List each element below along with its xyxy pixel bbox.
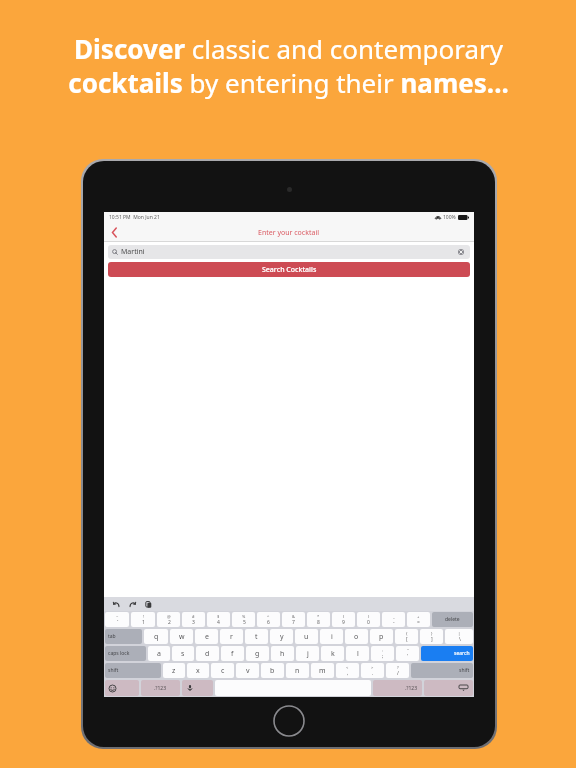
button[interactable]: o xyxy=(345,629,368,644)
button[interactable]: shift xyxy=(105,663,161,678)
staticText: { xyxy=(406,631,408,636)
button[interactable]: ( xyxy=(332,612,355,627)
button[interactable]: k xyxy=(321,646,344,661)
button[interactable]: q xyxy=(144,629,168,644)
button[interactable]: f xyxy=(221,646,244,661)
button[interactable]: Search Cocktails xyxy=(108,262,470,277)
staticText: m xyxy=(319,666,326,676)
staticText: ! xyxy=(143,614,145,619)
staticText: 6 xyxy=(267,619,270,626)
button[interactable]: % xyxy=(232,612,255,627)
staticText: / xyxy=(397,670,399,677)
button[interactable]: Redo xyxy=(127,599,137,609)
button[interactable]: } xyxy=(420,629,443,644)
staticText: @ xyxy=(167,614,171,619)
button[interactable]: x xyxy=(187,663,209,678)
button[interactable]: caps lock xyxy=(105,646,146,661)
button[interactable]: ! xyxy=(131,612,155,627)
button[interactable]: delete xyxy=(432,612,473,627)
staticText: ~ xyxy=(116,614,119,619)
button[interactable]: ~ xyxy=(105,612,129,627)
staticText: 9 xyxy=(342,619,345,626)
button[interactable]: # xyxy=(182,612,205,627)
button[interactable]: > xyxy=(361,663,384,678)
button[interactable]: Dictation xyxy=(182,680,213,696)
button[interactable]: Martini xyxy=(108,245,470,259)
button[interactable]: Undo xyxy=(111,599,121,609)
staticText: = xyxy=(417,619,420,626)
button[interactable]: Paste xyxy=(143,599,153,609)
button[interactable]: shift xyxy=(411,663,473,678)
staticText: e xyxy=(205,632,209,642)
button[interactable]: : xyxy=(371,646,394,661)
button[interactable]: h xyxy=(271,646,294,661)
button[interactable]: Back xyxy=(104,223,124,242)
button[interactable]: + xyxy=(407,612,430,627)
button[interactable]: t xyxy=(245,629,268,644)
button[interactable]: @ xyxy=(157,612,180,627)
staticText: shift xyxy=(459,667,470,674)
staticText: z xyxy=(172,666,176,676)
staticText: $ xyxy=(217,614,220,619)
staticText: \ xyxy=(459,636,461,643)
button[interactable]: z xyxy=(163,663,185,678)
button[interactable]: p xyxy=(370,629,393,644)
staticText: i xyxy=(331,632,333,642)
staticText: d xyxy=(205,649,210,659)
staticText: Search Cocktails xyxy=(262,265,317,275)
button[interactable]: Emoji xyxy=(105,680,139,696)
button[interactable]: i xyxy=(320,629,343,644)
button[interactable]: | xyxy=(445,629,473,644)
button[interactable]: n xyxy=(286,663,309,678)
button[interactable]: g xyxy=(246,646,269,661)
button[interactable]: $ xyxy=(207,612,230,627)
staticText: r xyxy=(230,632,233,642)
button[interactable]: & xyxy=(282,612,305,627)
button[interactable]: b xyxy=(261,663,284,678)
staticText: o xyxy=(354,632,359,642)
staticText: l xyxy=(357,649,359,659)
button[interactable]: l xyxy=(346,646,369,661)
button[interactable]: a xyxy=(148,646,170,661)
button[interactable]: < xyxy=(336,663,359,678)
staticText: c xyxy=(221,666,225,676)
staticText: [ xyxy=(406,636,408,643)
button[interactable]: c xyxy=(211,663,234,678)
staticText: : xyxy=(382,648,384,653)
button[interactable]: " xyxy=(396,646,419,661)
staticText: n xyxy=(295,666,300,676)
button[interactable]: .?123 xyxy=(141,680,180,696)
button[interactable]: d xyxy=(196,646,219,661)
button[interactable]: * xyxy=(307,612,330,627)
staticText: 4 xyxy=(217,619,220,626)
button[interactable]: ) xyxy=(357,612,380,627)
button[interactable]: y xyxy=(270,629,293,644)
staticText: k xyxy=(331,649,335,659)
staticText: .?123 xyxy=(154,685,167,692)
button[interactable]: j xyxy=(296,646,319,661)
button[interactable]: v xyxy=(236,663,259,678)
staticText: ] xyxy=(431,636,433,643)
button[interactable]: m xyxy=(311,663,334,678)
button[interactable]: s xyxy=(172,646,194,661)
button[interactable]: .?123 xyxy=(373,680,422,696)
staticText: < xyxy=(346,665,349,670)
button[interactable]: tab xyxy=(105,629,142,644)
button[interactable]: Clear text xyxy=(456,247,466,257)
button[interactable]: ? xyxy=(386,663,409,678)
staticText: _ xyxy=(393,614,395,619)
button[interactable]: ^ xyxy=(257,612,280,627)
button[interactable]: u xyxy=(295,629,318,644)
button[interactable]: Hide keyboard xyxy=(424,680,473,696)
button[interactable]: { xyxy=(395,629,418,644)
button[interactable]: search xyxy=(421,646,473,661)
staticText: v xyxy=(246,666,250,676)
staticText: 10:51 PM Mon Jun 21 xyxy=(109,214,160,221)
button[interactable]: w xyxy=(170,629,193,644)
staticText: search xyxy=(454,650,470,657)
staticText: % xyxy=(242,614,246,619)
button[interactable]: e xyxy=(195,629,218,644)
button[interactable]: _ xyxy=(382,612,405,627)
button[interactable]: r xyxy=(220,629,243,644)
